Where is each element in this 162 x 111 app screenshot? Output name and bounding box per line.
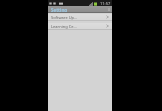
staticText: Learning Center [51, 24, 78, 29]
staticText: 11:57 [100, 1, 111, 6]
staticText: Software Update [51, 15, 78, 20]
button[interactable]: Setting [48, 6, 112, 13]
staticText: Setting [51, 7, 68, 13]
button[interactable]: Software Update [48, 14, 112, 21]
button[interactable]: Learning Center [48, 23, 112, 30]
